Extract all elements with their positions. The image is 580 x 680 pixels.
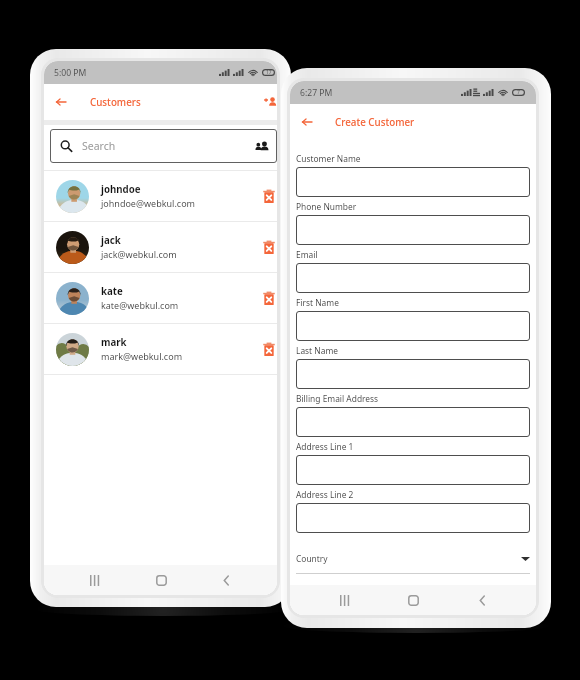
staticText: Customers <box>90 96 141 109</box>
staticText: jack <box>101 234 121 247</box>
button[interactable]: Recents <box>331 586 359 614</box>
button[interactable]: Country <box>296 549 530 568</box>
button[interactable] <box>296 167 530 197</box>
staticText: johndoe@webkul.com <box>101 197 196 209</box>
staticText: Search <box>82 139 116 153</box>
button[interactable]: Delete <box>261 286 277 310</box>
button[interactable] <box>296 455 530 485</box>
button[interactable] <box>296 407 530 437</box>
staticText: kate@webkul.com <box>101 299 179 311</box>
staticText: Phone Number <box>296 201 357 212</box>
button[interactable]: mark <box>44 324 277 374</box>
button[interactable] <box>296 263 530 293</box>
button[interactable]: Delete <box>261 184 277 208</box>
button[interactable] <box>296 311 530 341</box>
staticText: First Name <box>296 297 339 308</box>
button[interactable]: Home <box>399 586 427 614</box>
button[interactable]: kate <box>44 273 277 323</box>
staticText: Customer Name <box>296 153 361 164</box>
staticText: mark <box>101 336 127 349</box>
button[interactable]: Back <box>468 586 496 614</box>
staticText: jack@webkul.com <box>101 248 177 260</box>
button[interactable] <box>296 215 530 245</box>
staticText: Email <box>296 249 318 260</box>
staticText: 17 <box>266 69 272 76</box>
button[interactable]: Recents <box>81 566 109 594</box>
button[interactable]: johndoe <box>44 171 277 221</box>
button[interactable]: jack <box>44 222 277 272</box>
staticText: Billing Email Address <box>296 393 379 404</box>
button[interactable] <box>296 359 530 389</box>
button[interactable]: Delete <box>261 337 277 361</box>
button[interactable]: Search <box>50 129 277 163</box>
staticText: johndoe <box>101 183 141 196</box>
staticText: 6:27 PM <box>300 87 333 99</box>
staticText: Last Name <box>296 345 338 356</box>
button[interactable]: Add customer <box>261 92 277 112</box>
button[interactable]: Delete <box>261 235 277 259</box>
button[interactable] <box>296 503 530 533</box>
staticText: Address Line 1 <box>296 441 354 452</box>
button[interactable]: Back <box>212 566 240 594</box>
staticText: Address Line 2 <box>296 489 354 500</box>
staticText: 7 <box>517 89 520 96</box>
staticText: 5:00 PM <box>54 67 87 79</box>
button[interactable]: Home <box>147 566 175 594</box>
staticText: mark@webkul.com <box>101 350 183 362</box>
button[interactable]: Back <box>290 105 324 139</box>
staticText: Create Customer <box>335 116 415 129</box>
staticText: Country <box>296 553 328 564</box>
button[interactable]: Back <box>44 85 78 119</box>
staticText: kate <box>101 285 123 298</box>
